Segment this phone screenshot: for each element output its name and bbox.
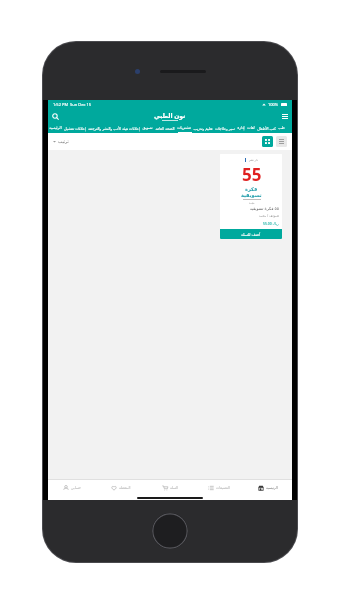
button[interactable]: List view — [276, 136, 287, 147]
staticText: مشتريات — [177, 126, 191, 130]
staticText: إعلانات تمشيل — [64, 126, 86, 131]
staticText: كتب الأطفال — [257, 126, 276, 131]
button[interactable]: Grid view — [262, 136, 273, 147]
staticText: التصنيفات — [216, 486, 230, 490]
button[interactable]: المفضلة — [96, 480, 145, 496]
button[interactable]: مشتريات — [177, 123, 191, 133]
button[interactable]: تسويق — [142, 123, 153, 133]
button[interactable]: الرئيسية — [243, 480, 292, 496]
button[interactable]: طب — [278, 123, 285, 133]
button[interactable]: التصنيفات — [194, 480, 243, 496]
button[interactable]: كتب الأطفال — [257, 123, 276, 133]
staticText: الرئيسية — [266, 486, 278, 490]
staticText: 55 — [242, 163, 262, 186]
button[interactable]: دار نشر — [220, 154, 282, 239]
staticText: للمؤلف / محمد — [259, 214, 279, 218]
staticText: نون الطبي — [154, 112, 186, 120]
staticText: تسويق — [142, 126, 153, 130]
button[interactable]: الرئيسية — [49, 123, 62, 133]
staticText: لغات — [247, 126, 255, 130]
staticText: ٥٥ فكرة تسويقية — [249, 206, 279, 212]
staticText: إعلانات هيئة الأدب والنشر والترجمة — [88, 126, 140, 131]
button[interactable]: إعلانات هيئة الأدب والنشر والترجمة — [88, 123, 140, 133]
staticText: دار نشر — [249, 158, 258, 162]
button[interactable]: تعليم وتدريب — [193, 123, 213, 133]
staticText: طب — [278, 126, 285, 130]
staticText: تسويقية — [241, 192, 262, 198]
button[interactable]: سير وعلاجات — [215, 123, 235, 133]
button[interactable]: Search — [48, 109, 62, 123]
staticText: المفضلة — [119, 486, 131, 490]
staticText: سير وعلاجات — [215, 126, 235, 131]
staticText: إدارة — [237, 126, 245, 130]
staticText: فكرة — [245, 186, 258, 192]
staticText: 100% — [268, 102, 279, 107]
button[interactable]: الصحة العامة — [155, 123, 175, 133]
button[interactable]: Menu — [278, 109, 292, 123]
staticText: ترتيب — [58, 139, 69, 144]
button[interactable]: ترتيب — [53, 139, 69, 144]
button[interactable]: السلة — [145, 480, 194, 496]
staticText: الصحة العامة — [155, 126, 175, 131]
staticText: طبعة — [249, 202, 255, 205]
staticText: تعليم وتدريب — [193, 126, 213, 131]
button[interactable]: لغات — [247, 123, 255, 133]
staticText: حسابي — [71, 486, 81, 490]
staticText: أضف للسلة — [241, 232, 261, 237]
staticText: 55.00 ريال — [263, 221, 279, 226]
button[interactable]: حسابي — [48, 480, 96, 496]
staticText: الرئيسية — [49, 126, 62, 130]
staticText: 1:52 PM Sun Dec 15 — [53, 102, 91, 107]
button[interactable]: أضف للسلة — [220, 229, 282, 239]
button[interactable]: إدارة — [237, 123, 245, 133]
staticText: السلة — [170, 486, 178, 490]
button[interactable]: إعلانات تمشيل — [64, 123, 86, 133]
